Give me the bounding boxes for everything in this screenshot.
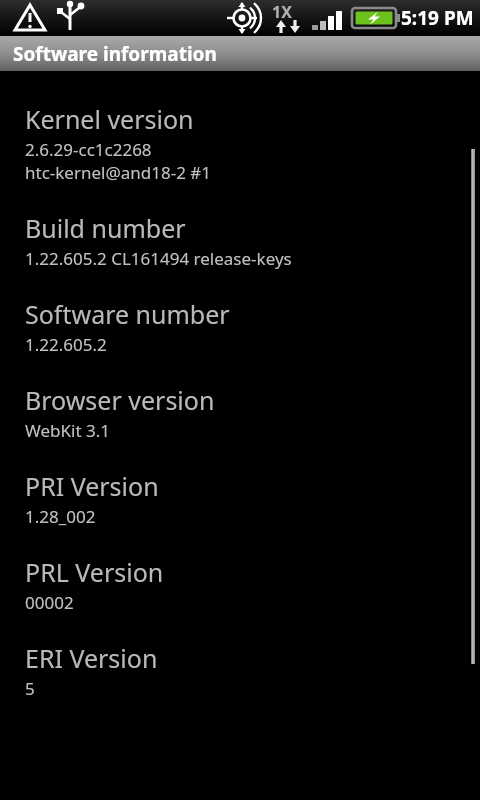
- staticText: Software information: [13, 41, 217, 67]
- button[interactable]: Software number: [0, 297, 480, 356]
- staticText: 5:19 PM: [401, 5, 474, 31]
- button[interactable]: Software information: [0, 36, 480, 71]
- button[interactable]: Kernel version: [0, 102, 480, 184]
- button[interactable]: ERI Version: [0, 641, 480, 700]
- staticText: 1.22.605.2 CL161494 release-keys: [25, 247, 292, 270]
- staticText: 1X: [272, 1, 292, 23]
- staticText: 1.28_002: [25, 505, 96, 528]
- staticText: 2.6.29-cc1c2268: [25, 138, 152, 161]
- staticText: Kernel version: [25, 102, 194, 136]
- staticText: htc-kernel@and18-2 #1: [25, 161, 211, 184]
- button[interactable]: PRI Version: [0, 469, 480, 528]
- staticText: PRL Version: [25, 555, 164, 589]
- button[interactable]: PRL Version: [0, 555, 480, 614]
- button[interactable]: Browser version: [0, 383, 480, 442]
- staticText: ERI Version: [25, 641, 158, 675]
- staticText: 00002: [25, 591, 74, 614]
- staticText: 1.22.605.2: [25, 333, 107, 356]
- staticText: 5: [25, 677, 35, 700]
- button[interactable]: Build number: [0, 211, 480, 270]
- staticText: Software number: [25, 297, 230, 331]
- staticText: Browser version: [25, 383, 215, 417]
- staticText: Build number: [25, 211, 186, 245]
- staticText: WebKit 3.1: [25, 419, 110, 442]
- staticText: PRI Version: [25, 469, 159, 503]
